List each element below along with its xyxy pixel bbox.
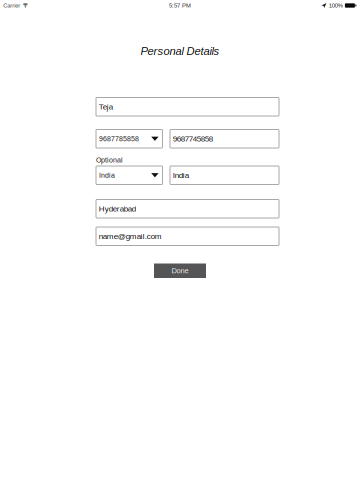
button[interactable]: Teja	[96, 97, 279, 116]
button[interactable]: name@gmail.com	[96, 227, 279, 245]
staticText: India	[99, 171, 115, 179]
staticText: Optional	[96, 156, 123, 164]
staticText: Done	[171, 267, 188, 275]
staticText: Personal Details	[140, 45, 219, 57]
staticText: Teja	[99, 102, 113, 111]
staticText: 100%	[329, 2, 343, 9]
button[interactable]: 9687745858	[170, 129, 279, 148]
staticText: 5:57 PM	[169, 2, 191, 9]
staticText: Carrier	[3, 2, 20, 9]
staticText: name@gmail.com	[99, 232, 162, 241]
staticText: Hyderabad	[99, 204, 136, 213]
staticText: 9687785858	[99, 135, 139, 143]
staticText: India	[173, 171, 189, 180]
staticText: 9687745858	[173, 134, 213, 143]
button[interactable]: 9687785858	[96, 129, 162, 148]
button[interactable]: India	[170, 166, 279, 184]
button[interactable]: Hyderabad	[96, 199, 279, 218]
button[interactable]: India	[96, 166, 162, 184]
button[interactable]: Done	[154, 263, 206, 278]
